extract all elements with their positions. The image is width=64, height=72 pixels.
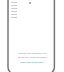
button[interactable]	[8, 7, 34, 10]
button[interactable]	[8, 16, 34, 19]
button[interactable]: Learn more	[20, 61, 44, 64]
button[interactable]	[8, 13, 34, 16]
staticText: Learn more about alerts	[20, 61, 44, 64]
button[interactable]	[8, 10, 34, 13]
staticText: get on your phone and watch	[18, 56, 47, 59]
button[interactable]	[8, 4, 34, 7]
button[interactable]	[8, 1, 34, 4]
staticText: Manage the notifications you	[18, 52, 47, 55]
